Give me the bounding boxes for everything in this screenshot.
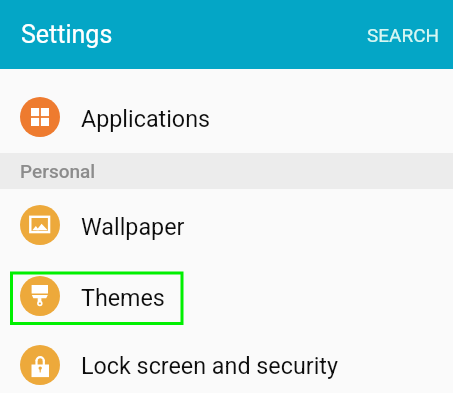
staticText: Wallpaper [81,213,185,240]
staticText: SEARCH [367,24,440,46]
staticText: Settings [21,20,113,49]
button[interactable]: SEARCH [352,10,453,60]
button[interactable]: Lock screen and security [0,331,453,393]
other: Themes [20,276,60,316]
button[interactable]: Wallpaper [0,189,453,260]
other: Applications [20,97,60,137]
staticText: Lock screen and security [81,352,338,379]
other: Wallpaper [20,205,60,245]
other: Lock screen and security [20,345,60,385]
staticText: Themes [81,284,165,311]
staticText: Applications [81,105,211,132]
button[interactable]: Themes [0,260,453,331]
button[interactable]: Applications [0,69,453,153]
staticText: Personal [20,160,96,182]
